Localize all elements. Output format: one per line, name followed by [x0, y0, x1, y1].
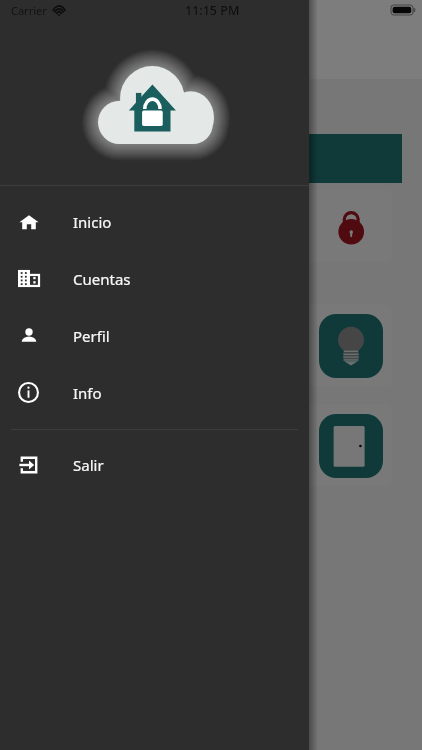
- button[interactable]: Salir: [0, 430, 309, 499]
- button[interactable]: Perfil: [0, 307, 309, 364]
- staticText: Info: [73, 383, 102, 403]
- staticText: Cuentas: [73, 269, 131, 289]
- staticText: Perfil: [73, 326, 110, 346]
- staticText: 11:15 PM: [185, 2, 240, 19]
- staticText: Salir: [73, 455, 104, 475]
- staticText: Inicio: [73, 212, 112, 232]
- button[interactable]: Inicio: [0, 193, 309, 250]
- staticText: Carrier: [11, 3, 47, 18]
- button[interactable]: Cuentas: [0, 250, 309, 307]
- button[interactable]: Info: [0, 364, 309, 421]
